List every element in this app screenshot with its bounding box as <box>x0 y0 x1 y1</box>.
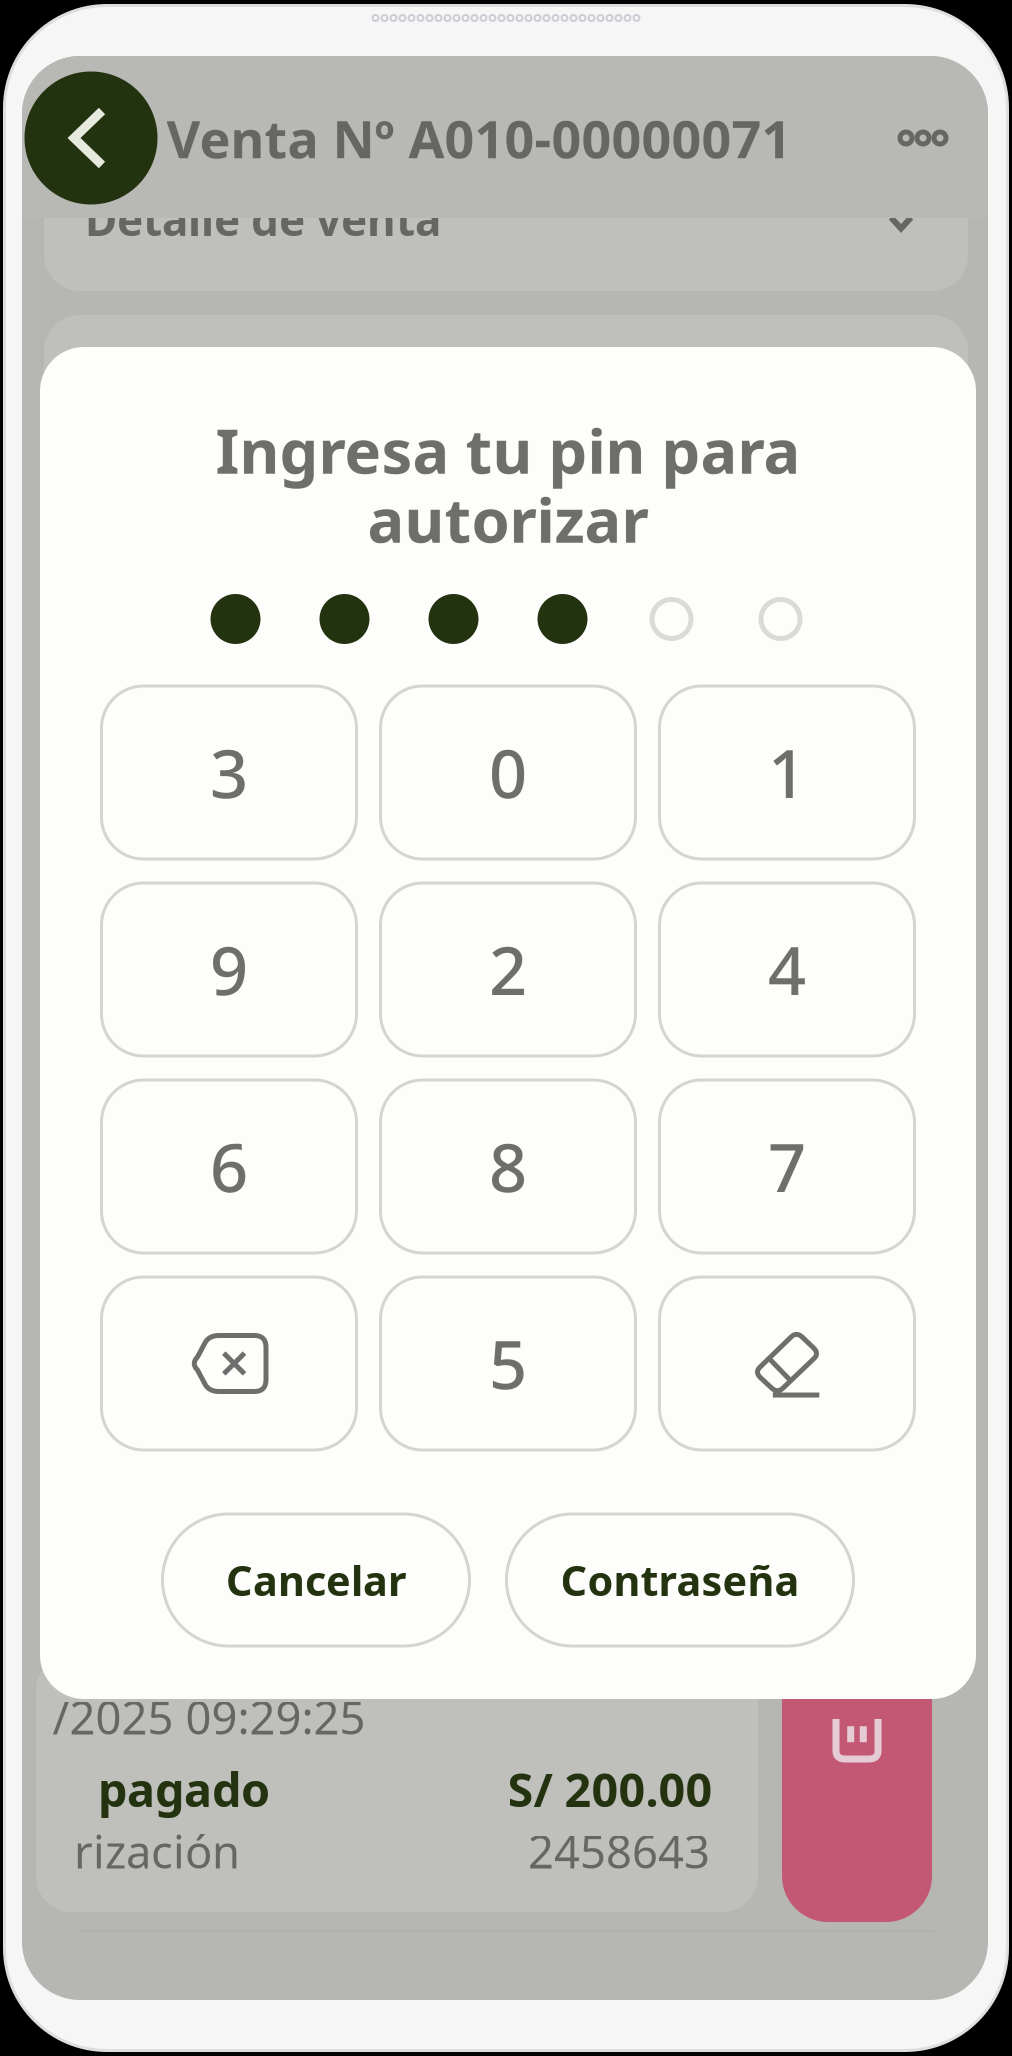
button[interactable]: 1 <box>659 686 914 859</box>
staticText: Venta Nº A010-00000071 <box>166 103 791 173</box>
staticText: 7 <box>768 1122 806 1211</box>
button[interactable]: 7 <box>659 1080 914 1253</box>
staticText: 2458643 <box>528 1821 710 1881</box>
button[interactable]: 9 <box>101 883 356 1056</box>
button[interactable]: Cancelar <box>162 1514 469 1646</box>
staticText: 9 <box>210 925 248 1014</box>
staticText: S/ 200.00 <box>507 1758 712 1820</box>
staticText: 6 <box>210 1122 248 1211</box>
staticText: Detalle de venta <box>85 190 441 248</box>
staticText: 0 <box>489 728 527 817</box>
staticText: 1 <box>768 728 806 817</box>
staticText: Cancelar <box>226 1553 406 1607</box>
staticText: pagado <box>98 1758 270 1820</box>
button[interactable]: More options <box>868 90 978 186</box>
button[interactable]: 0 <box>380 686 635 859</box>
staticText: 5 <box>489 1319 527 1408</box>
staticText: 4 <box>768 925 806 1014</box>
staticText: Contraseña <box>560 1553 799 1607</box>
button[interactable]: 2 <box>380 883 635 1056</box>
staticText: 2 <box>489 925 527 1014</box>
button[interactable]: 8 <box>380 1080 635 1253</box>
button[interactable]: Back <box>24 71 157 204</box>
staticText: Ingresa tu pin para <box>215 409 800 491</box>
button[interactable]: Contraseña <box>506 1514 853 1646</box>
button[interactable]: Delete last digit <box>101 1277 356 1450</box>
staticText: /2025 09:29:25 <box>52 1687 365 1747</box>
staticText: 8 <box>489 1122 527 1211</box>
button[interactable]: 3 <box>101 686 356 859</box>
button[interactable]: 4 <box>659 883 914 1056</box>
button[interactable]: Detalle de venta <box>44 164 968 291</box>
staticText: autorizar <box>367 478 648 560</box>
button[interactable]: 6 <box>101 1080 356 1253</box>
button[interactable]: Clear all <box>659 1277 914 1450</box>
staticText: rización <box>74 1821 240 1881</box>
button[interactable]: Delete payment <box>782 1656 932 1922</box>
button[interactable]: 5 <box>380 1277 635 1450</box>
staticText: 3 <box>210 728 248 817</box>
